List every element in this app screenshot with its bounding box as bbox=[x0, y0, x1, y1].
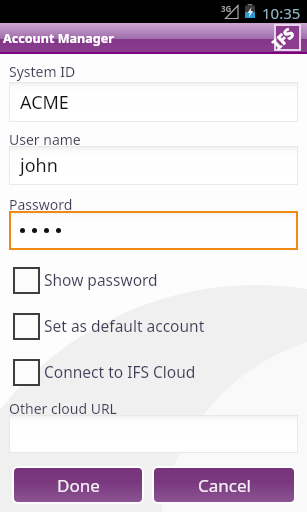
staticText: Password bbox=[9, 195, 73, 214]
button[interactable]: Done bbox=[14, 468, 142, 502]
button[interactable]: Connect to IFS Cloud bbox=[13, 359, 196, 386]
staticText: User name bbox=[9, 130, 81, 149]
staticText: Show password bbox=[44, 269, 158, 290]
staticText: Set as default account bbox=[44, 315, 205, 336]
button[interactable]: IFS logo bbox=[276, 26, 299, 49]
staticText: Account Manager bbox=[3, 30, 114, 47]
staticText: Cancel bbox=[198, 474, 251, 497]
button[interactable]: Show password bbox=[13, 267, 158, 294]
button[interactable]: Cancel bbox=[154, 468, 294, 502]
staticText: Done bbox=[57, 474, 100, 497]
button[interactable]: john bbox=[9, 146, 298, 185]
button[interactable] bbox=[9, 211, 298, 250]
button[interactable]: Set as default account bbox=[13, 313, 205, 340]
staticText: System ID bbox=[9, 62, 76, 81]
staticText: ACME bbox=[20, 90, 69, 115]
staticText: Connect to IFS Cloud bbox=[44, 361, 196, 382]
staticText: 3G bbox=[221, 3, 232, 14]
staticText: john bbox=[20, 153, 58, 178]
staticText: Other cloud URL bbox=[9, 399, 117, 418]
staticText: 10:35 bbox=[262, 3, 301, 23]
staticText: IFS bbox=[267, 22, 299, 53]
button[interactable] bbox=[9, 415, 298, 453]
button[interactable]: ACME bbox=[9, 82, 298, 122]
